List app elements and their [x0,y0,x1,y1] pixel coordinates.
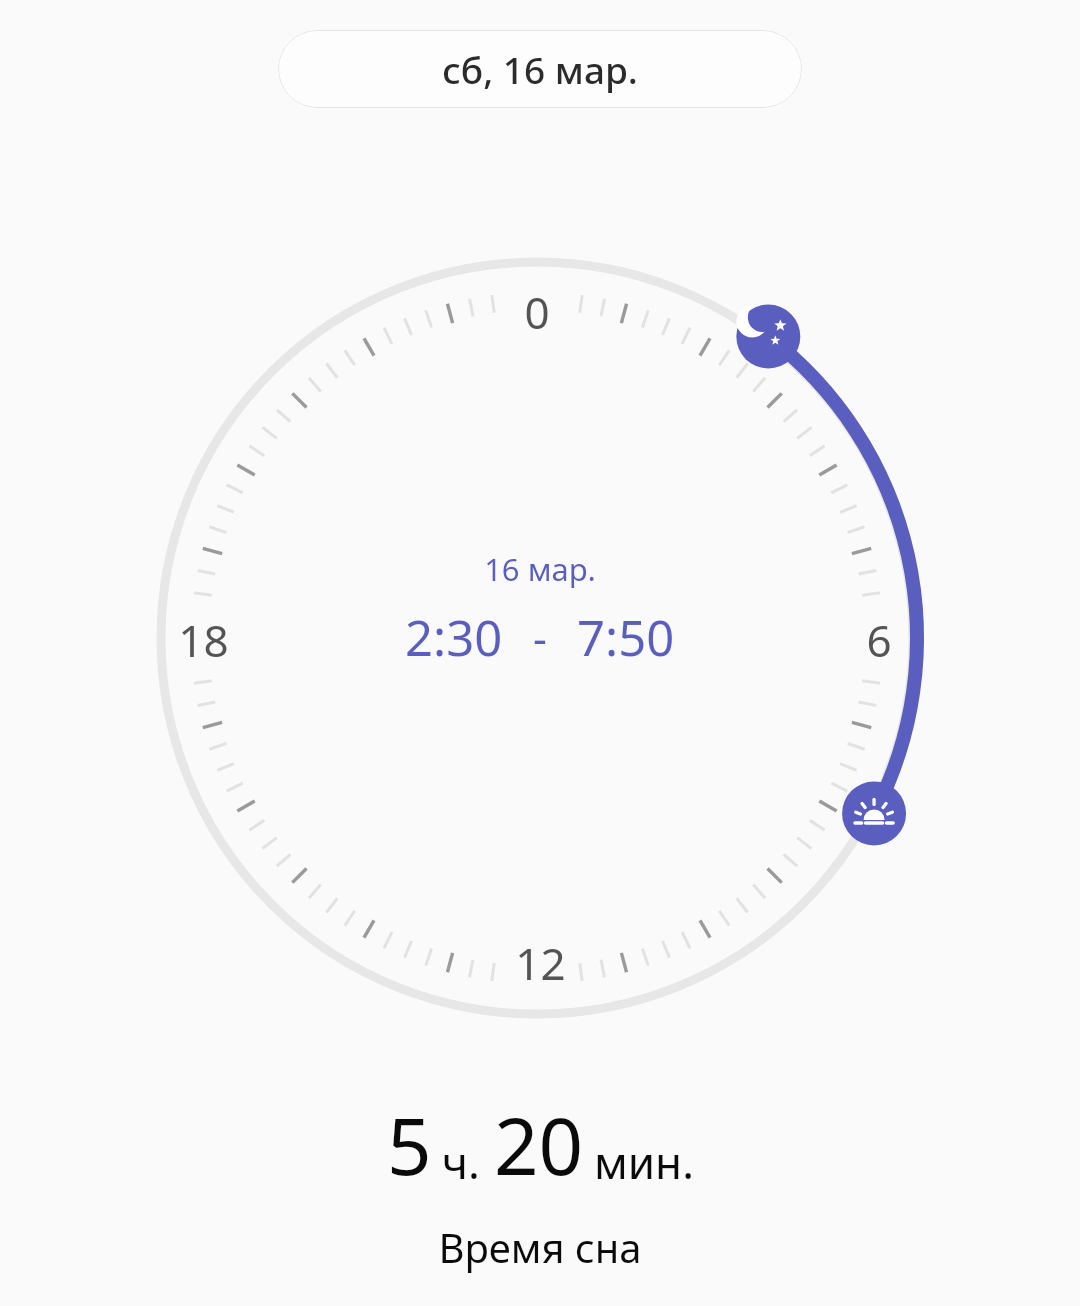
staticText: 16 мар. [484,548,596,590]
staticText: 2:30 [405,604,503,671]
staticText: сб, 16 мар. [442,44,638,94]
staticText: - [533,608,547,667]
staticText: 7:50 [577,604,675,671]
staticText: мин. [594,1132,694,1192]
staticText: 5 [387,1092,432,1198]
button[interactable]: Время засыпания 2:30 [733,295,813,375]
staticText: 18 [178,610,229,670]
staticText: 20 [494,1092,584,1198]
staticText: 0 [524,282,550,342]
staticText: ч. [442,1132,480,1192]
staticText: Время сна [438,1220,642,1274]
staticText: 12 [515,933,566,993]
button[interactable]: Время подъёма 7:50 [837,777,917,857]
staticText: 6 [866,610,892,670]
button[interactable]: сб, 16 мар. [278,30,802,108]
